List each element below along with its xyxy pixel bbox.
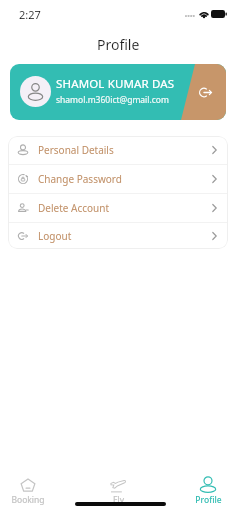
- button[interactable]: Delete Account: [8, 194, 228, 222]
- button[interactable]: Fly: [101, 477, 135, 506]
- staticText: SHAMOL KUMAR DAS: [56, 76, 175, 92]
- staticText: Logout: [38, 229, 72, 243]
- staticText: Delete Account: [38, 201, 110, 215]
- staticText: shamol.m360ict@gmail.com: [56, 94, 169, 106]
- button[interactable]: Booking: [11, 477, 45, 506]
- staticText: Profile: [97, 35, 140, 54]
- staticText: Change Password: [38, 172, 122, 186]
- staticText: 2:27: [19, 7, 41, 22]
- staticText: Fly: [113, 494, 124, 506]
- staticText: Booking: [11, 494, 45, 506]
- button[interactable]: Personal Details: [8, 136, 228, 164]
- staticText: Profile: [195, 494, 222, 506]
- staticText: Personal Details: [38, 143, 114, 157]
- button[interactable]: Logout: [8, 223, 228, 249]
- button[interactable]: Logout: [194, 81, 216, 103]
- button[interactable]: Change Password: [8, 165, 228, 193]
- button[interactable]: Profile: [191, 477, 225, 506]
